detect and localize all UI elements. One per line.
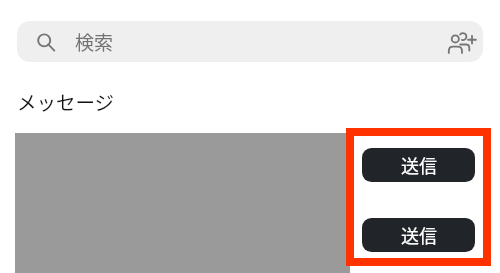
staticText: メッセージ [17, 87, 115, 115]
button[interactable]: 送信 [362, 148, 475, 182]
button[interactable]: 検索 [17, 21, 483, 62]
button[interactable]: 送信 [362, 218, 475, 252]
staticText: 検索 [75, 28, 114, 56]
button[interactable]: Add people [442, 23, 482, 62]
staticText: 送信 [401, 152, 437, 178]
staticText: 送信 [401, 222, 437, 248]
